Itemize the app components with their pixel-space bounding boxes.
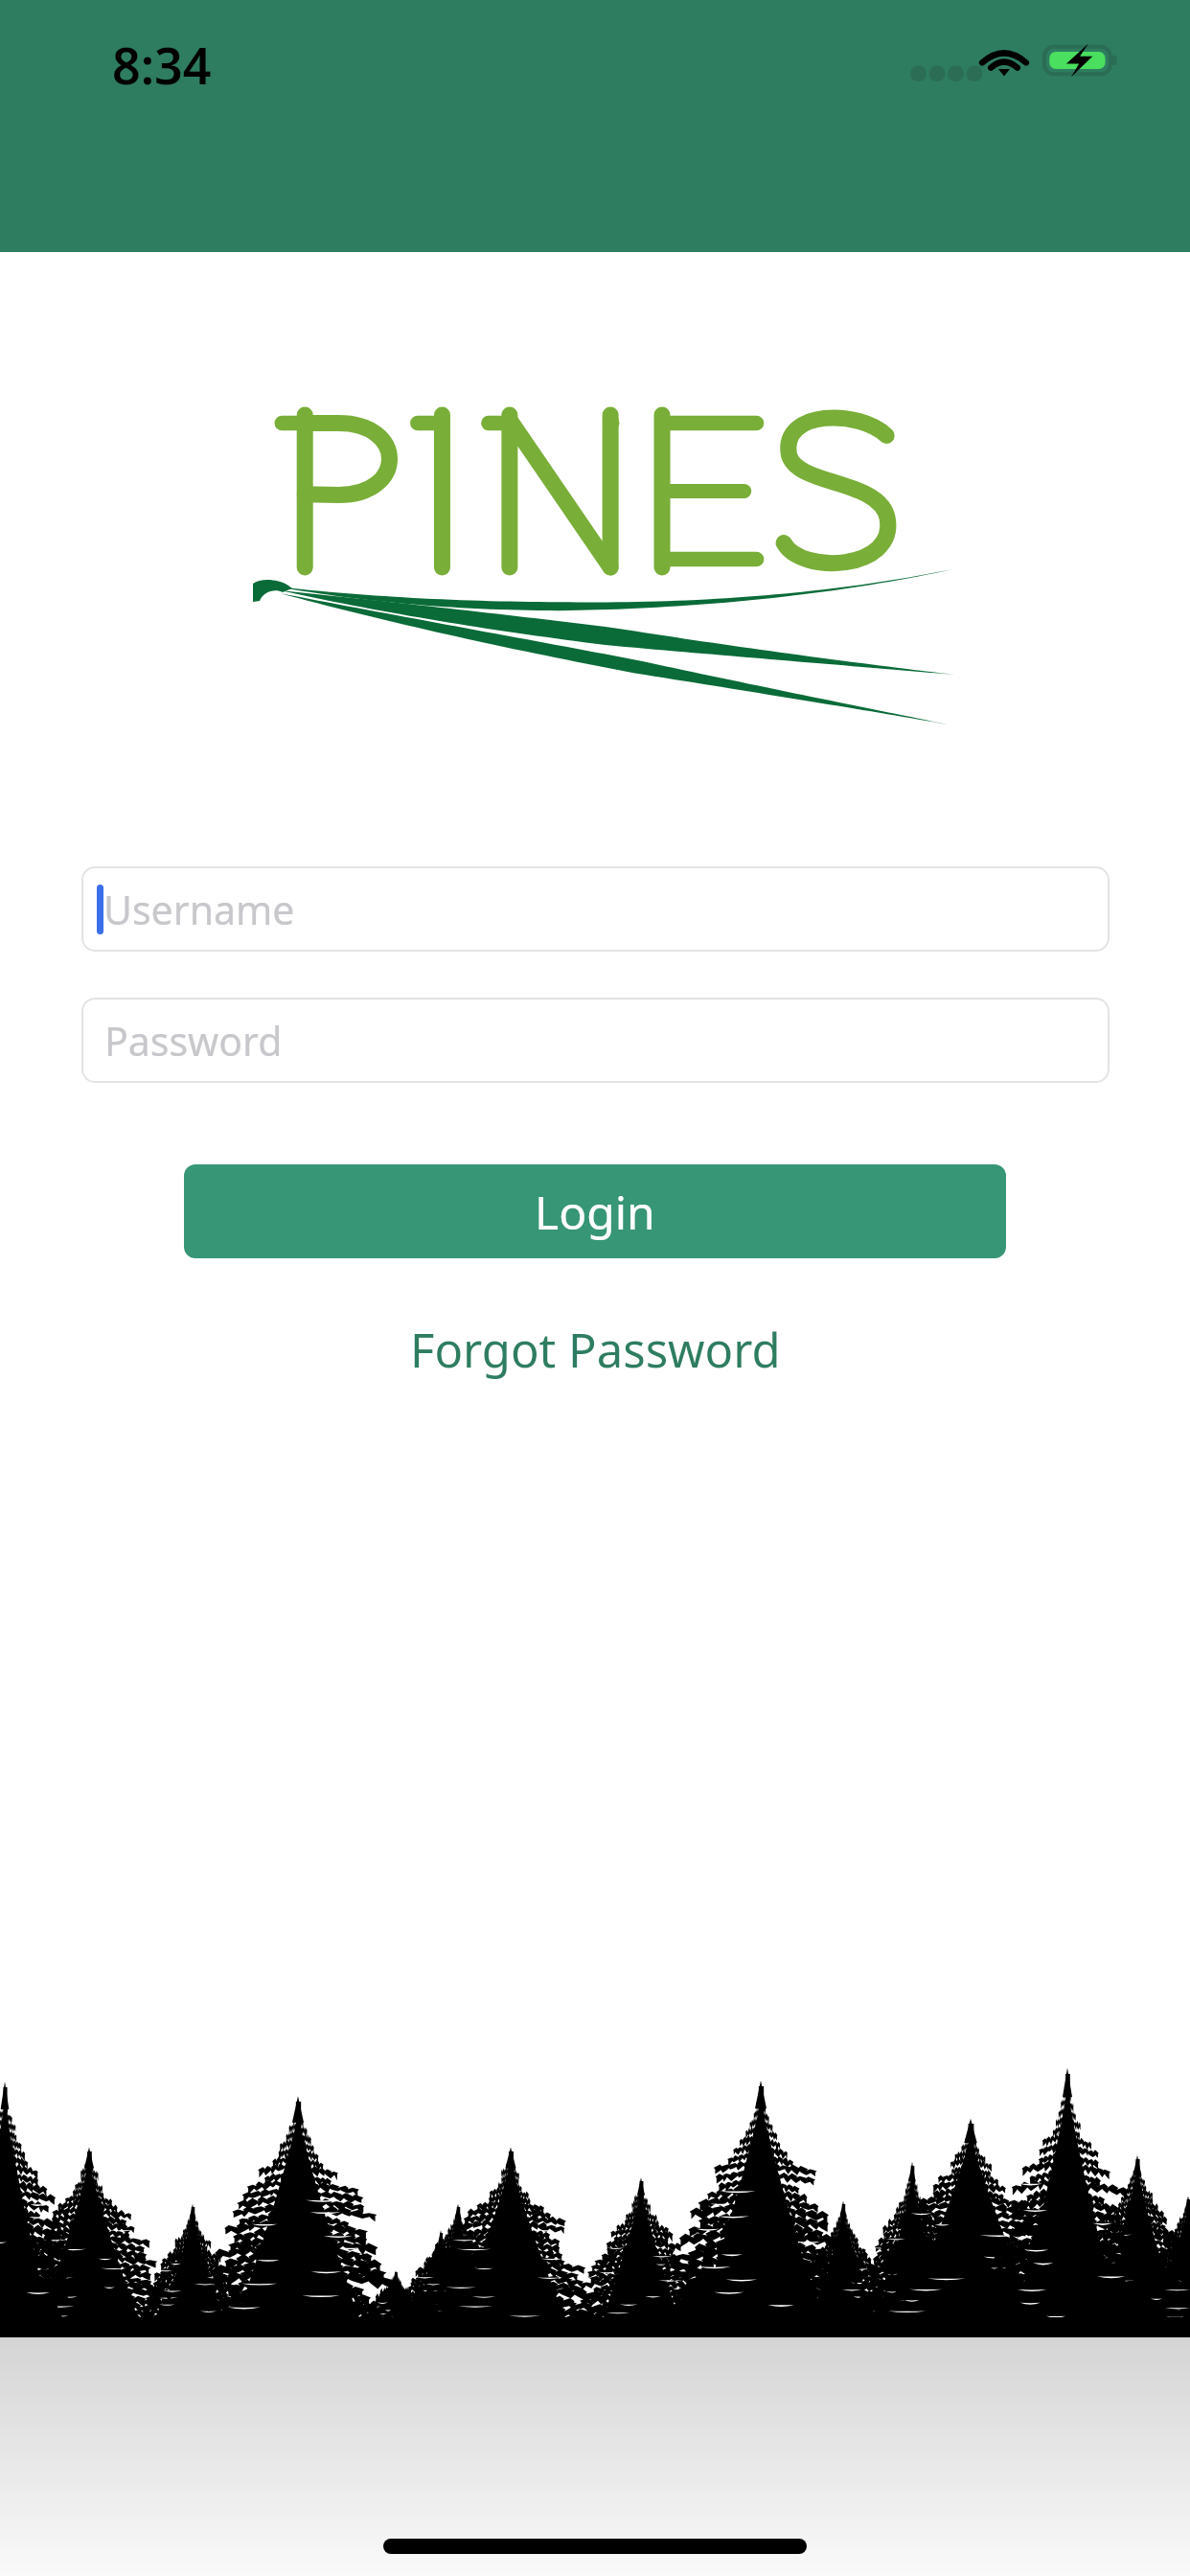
staticText: 8:34 bbox=[112, 31, 212, 99]
staticText: Password bbox=[104, 1014, 283, 1068]
staticText: Forgot Password bbox=[410, 1318, 781, 1382]
button[interactable]: Forgot Password bbox=[389, 1308, 802, 1391]
button[interactable]: Login bbox=[184, 1164, 1006, 1258]
button[interactable]: Username bbox=[81, 866, 1110, 952]
staticText: Login bbox=[535, 1181, 655, 1243]
staticText: Username bbox=[103, 883, 295, 936]
button[interactable]: Password bbox=[81, 998, 1110, 1083]
